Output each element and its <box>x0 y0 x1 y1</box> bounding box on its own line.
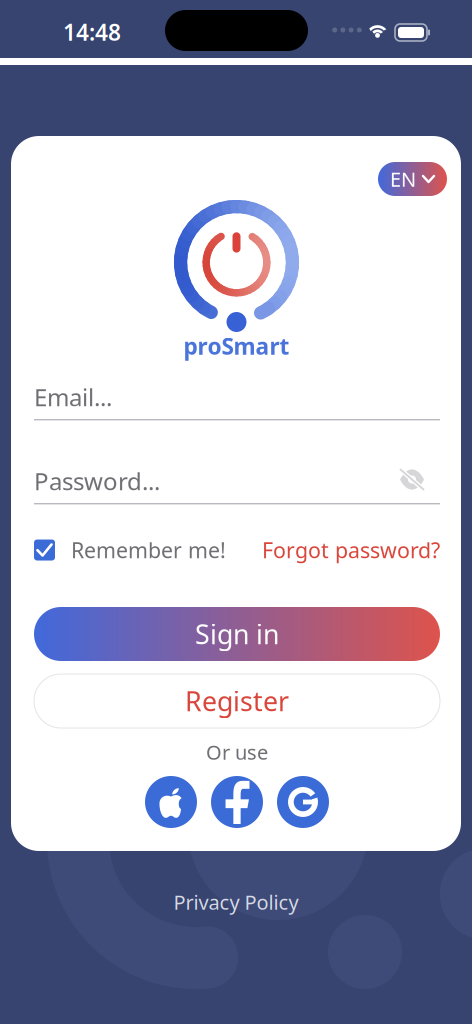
staticText: Or use <box>206 739 268 765</box>
staticText: 14:48 <box>63 17 121 47</box>
button[interactable]: Sign in with Apple <box>145 776 197 828</box>
button[interactable]: Sign in with Google <box>277 776 329 828</box>
button[interactable]: Sign in <box>34 607 440 661</box>
staticText: Register <box>185 683 289 719</box>
button[interactable]: Sign in with Facebook <box>211 776 263 828</box>
staticText: Privacy Policy <box>173 889 298 915</box>
button[interactable]: Privacy Policy <box>0 887 472 917</box>
button[interactable]: Show password <box>392 461 432 498</box>
button[interactable]: Register <box>34 674 440 728</box>
button[interactable]: Remember me! <box>34 536 226 564</box>
staticText: Forgot password? <box>262 536 440 564</box>
staticText: proSmart <box>183 331 289 361</box>
staticText: EN <box>390 166 416 192</box>
staticText: Password... <box>34 465 160 497</box>
staticText: Email... <box>34 381 112 413</box>
button[interactable]: Forgot password? <box>262 536 440 564</box>
button[interactable]: EN <box>378 162 447 196</box>
staticText: Remember me! <box>71 536 226 564</box>
staticText: Sign in <box>195 616 279 652</box>
